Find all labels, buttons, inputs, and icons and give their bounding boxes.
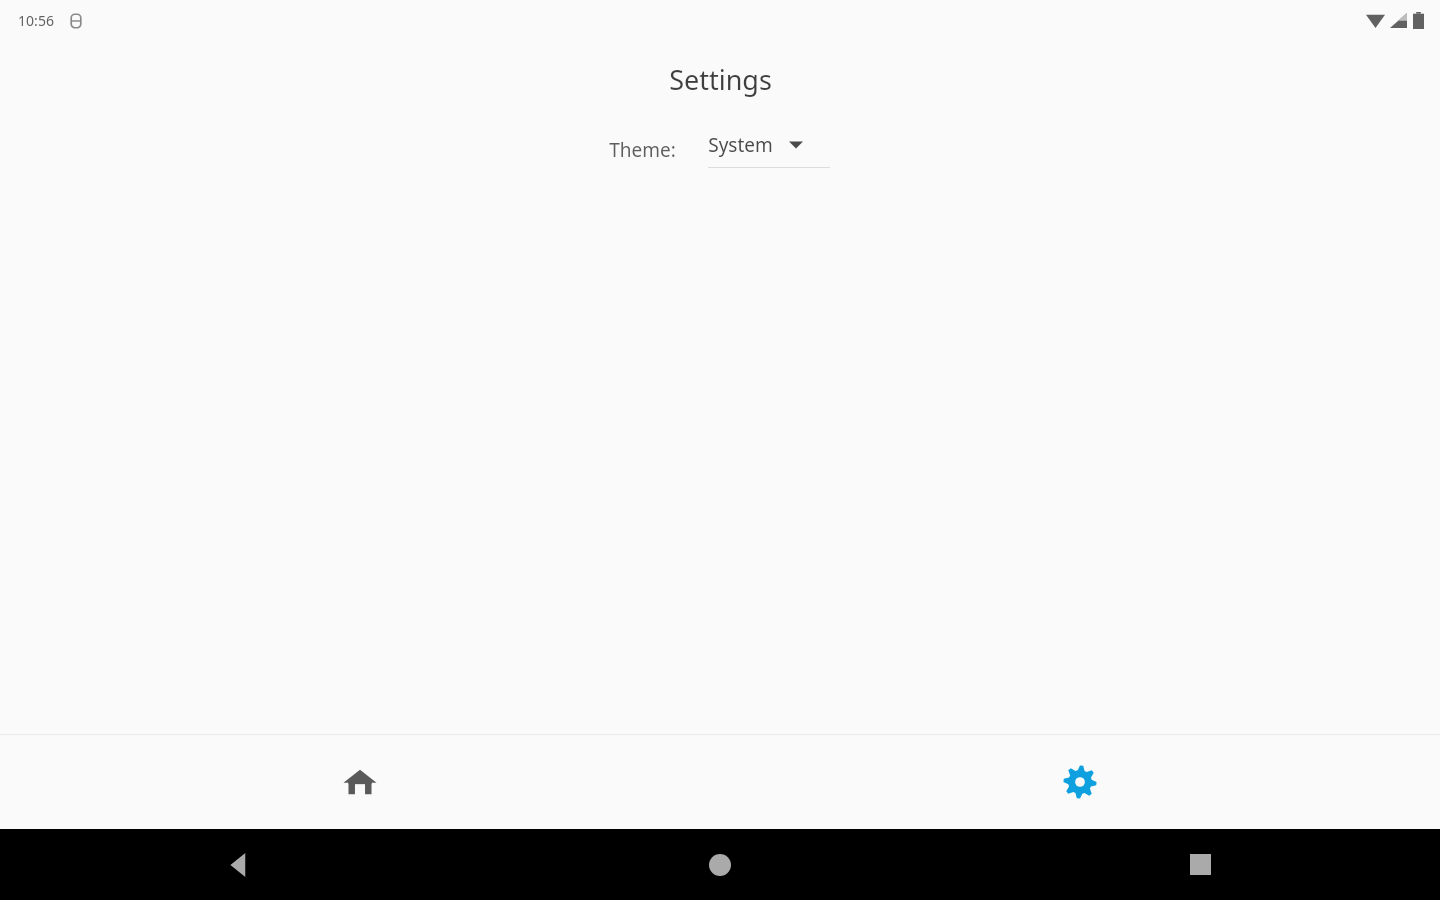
button[interactable]: Recent apps — [960, 829, 1440, 900]
staticText: System — [708, 132, 773, 158]
button[interactable]: Back — [0, 829, 480, 900]
staticText: 10:56 — [18, 11, 54, 30]
button[interactable]: Home — [0, 735, 720, 829]
staticText: Settings — [669, 61, 772, 98]
button[interactable]: Settings — [720, 735, 1440, 829]
staticText: Theme: — [609, 137, 676, 163]
button[interactable]: Home — [480, 829, 960, 900]
button[interactable]: System — [706, 132, 832, 168]
